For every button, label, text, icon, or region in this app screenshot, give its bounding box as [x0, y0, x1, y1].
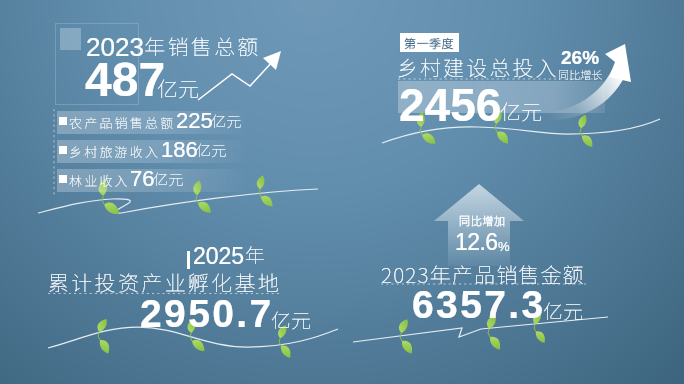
staticText: 2456	[399, 79, 502, 130]
staticText: 亿元	[271, 305, 311, 334]
staticText: 12.6	[455, 229, 498, 255]
staticText: 6357.3	[412, 283, 546, 327]
staticText: 乡村旅游收入	[69, 142, 161, 161]
staticText: 2025	[193, 243, 245, 269]
staticText: 第一季度	[404, 34, 455, 51]
staticText: 亿元	[500, 96, 542, 126]
staticText: 乡村建设总投入	[397, 52, 559, 82]
button[interactable]: 林业收入	[57, 169, 247, 192]
button[interactable]: 乡村旅游收入	[57, 140, 247, 163]
staticText: 亿元	[157, 73, 199, 103]
button[interactable]: 第一季度	[404, 34, 455, 51]
staticText: 累计投资产业孵化基地	[48, 267, 281, 297]
staticText: 225	[176, 108, 213, 131]
staticText: 年	[245, 240, 267, 269]
staticText: 2023	[86, 32, 144, 61]
staticText: 农产品销售总额	[69, 113, 176, 132]
staticText: 2023年产品销售金额	[381, 259, 585, 289]
staticText: 亿元	[196, 139, 227, 161]
staticText: 同比增加	[459, 212, 506, 228]
staticText: 26%	[561, 47, 600, 68]
staticText: 年销售总额	[144, 31, 261, 61]
staticText: 林业收入	[69, 171, 130, 190]
button[interactable]: 农产品销售总额	[57, 111, 247, 134]
staticText: 亿元	[543, 296, 583, 325]
staticText: 同比增长	[558, 66, 603, 82]
staticText: 186	[161, 137, 198, 160]
staticText: 亿元	[211, 110, 242, 132]
staticText: %	[498, 239, 510, 254]
staticText: 亿元	[153, 168, 184, 190]
staticText: 487	[85, 53, 166, 107]
staticText: 2950.7	[140, 292, 274, 336]
staticText: 76	[130, 166, 155, 189]
